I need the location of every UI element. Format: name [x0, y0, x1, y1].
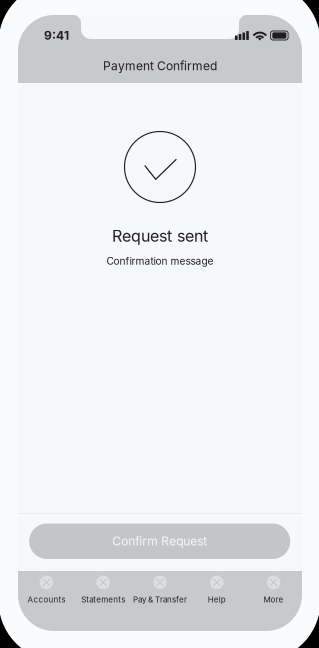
staticText: Payment Confirmed: [103, 59, 217, 73]
button[interactable]: Help: [188, 573, 245, 607]
button[interactable]: Pay & Transfer: [132, 573, 188, 607]
button[interactable]: Confirm Request: [29, 523, 290, 559]
staticText: Pay & Transfer: [133, 595, 187, 604]
staticText: 9:41: [44, 28, 69, 43]
staticText: Statements: [81, 595, 125, 604]
staticText: Accounts: [27, 595, 65, 604]
staticText: Confirm Request: [112, 534, 207, 548]
button[interactable]: More: [245, 573, 302, 607]
staticText: More: [264, 595, 284, 604]
button[interactable]: Accounts: [18, 573, 75, 607]
staticText: Request sent: [112, 226, 208, 246]
staticText: Help: [208, 595, 226, 604]
button[interactable]: Statements: [75, 573, 132, 607]
staticText: Confirmation message: [106, 255, 213, 267]
